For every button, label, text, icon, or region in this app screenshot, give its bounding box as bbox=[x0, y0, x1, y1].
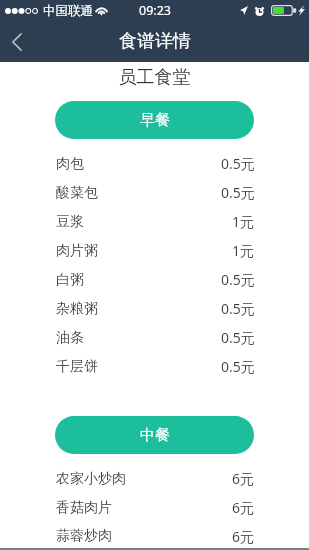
staticText: 1元 bbox=[232, 212, 255, 231]
staticText: 油条 bbox=[56, 329, 84, 347]
button[interactable]: 杂粮粥 bbox=[0, 294, 309, 323]
staticText: 6元 bbox=[232, 469, 255, 488]
button[interactable]: 千层饼 bbox=[0, 352, 309, 381]
staticText: 员工食堂 bbox=[0, 66, 309, 89]
button[interactable]: 酸菜包 bbox=[0, 178, 309, 207]
staticText: 0.5元 bbox=[221, 183, 255, 202]
staticText: 肉片粥 bbox=[56, 242, 98, 260]
staticText: 0.5元 bbox=[221, 154, 255, 173]
staticText: 0.5元 bbox=[221, 328, 255, 347]
button[interactable]: Back bbox=[0, 21, 40, 62]
staticText: 肉包 bbox=[56, 155, 84, 173]
staticText: 豆浆 bbox=[56, 213, 84, 231]
staticText: 6元 bbox=[232, 498, 255, 517]
button[interactable]: 豆浆 bbox=[0, 207, 309, 236]
button[interactable]: 白粥 bbox=[0, 265, 309, 294]
staticText: 酸菜包 bbox=[56, 184, 98, 202]
button[interactable]: 香菇肉片 bbox=[0, 493, 309, 522]
staticText: 中餐 bbox=[140, 426, 170, 445]
staticText: 杂粮粥 bbox=[56, 300, 98, 318]
staticText: 0.5元 bbox=[221, 357, 255, 376]
button[interactable]: 早餐 bbox=[55, 101, 254, 139]
button[interactable]: 油条 bbox=[0, 323, 309, 352]
staticText: 早餐 bbox=[140, 111, 170, 130]
button[interactable]: 农家小炒肉 bbox=[0, 464, 309, 493]
staticText: 白粥 bbox=[56, 271, 84, 289]
staticText: 中国联通 bbox=[43, 3, 93, 19]
staticText: 香菇肉片 bbox=[56, 499, 112, 517]
staticText: 0.5元 bbox=[221, 270, 255, 289]
staticText: 0.5元 bbox=[221, 299, 255, 318]
staticText: 蒜蓉炒肉 bbox=[56, 527, 112, 545]
button[interactable]: 蒜蓉炒肉 bbox=[0, 522, 309, 550]
staticText: 09:23 bbox=[139, 2, 171, 19]
staticText: 6元 bbox=[232, 527, 255, 546]
button[interactable]: 肉包 bbox=[0, 149, 309, 178]
staticText: 食谱详情 bbox=[119, 30, 191, 53]
button[interactable]: 中餐 bbox=[55, 416, 254, 454]
button[interactable]: 肉片粥 bbox=[0, 236, 309, 265]
staticText: 农家小炒肉 bbox=[56, 470, 126, 488]
staticText: 1元 bbox=[232, 241, 255, 260]
staticText: 千层饼 bbox=[56, 358, 98, 376]
